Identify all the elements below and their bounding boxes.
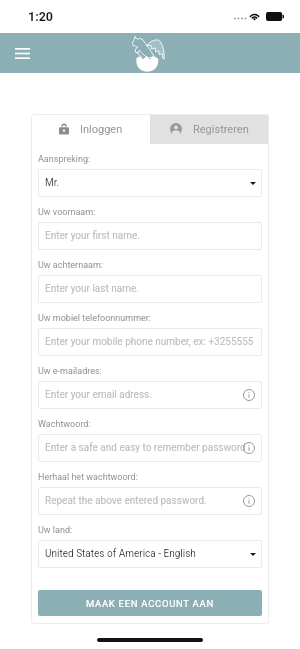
staticText: Enter your first name. (45, 230, 140, 242)
staticText: MAAK EEN ACCOUNT AAN (86, 598, 214, 609)
button[interactable]: Info (242, 441, 256, 455)
button[interactable]: Enter your first name. (38, 222, 262, 250)
staticText: Uw achternaam: (38, 260, 103, 271)
button[interactable]: Mr. (38, 169, 262, 197)
button[interactable]: Menu (10, 41, 34, 65)
staticText: Enter a safe and easy to remember passwo… (45, 442, 246, 454)
button[interactable]: Enter your last name. (38, 275, 262, 303)
staticText: Registreren (193, 123, 249, 136)
button[interactable]: Enter your mobile phone number, ex: +325… (38, 328, 262, 356)
staticText: Enter your mobile phone number, ex: +325… (45, 336, 254, 348)
button[interactable]: MAAK EEN ACCOUNT AAN (38, 590, 262, 616)
button[interactable]: Info (242, 494, 256, 508)
staticText: Enter your email adress. (45, 389, 152, 401)
button[interactable]: Repeat the above entered password. (38, 487, 262, 515)
button[interactable]: Enter a safe and easy to remember passwo… (38, 434, 262, 462)
staticText: Uw land: (38, 525, 73, 536)
staticText: Uw voornaam: (38, 207, 96, 218)
staticText: 1:20 (28, 9, 54, 24)
staticText: Herhaal het wachtwoord: (38, 472, 138, 483)
staticText: Uw mobiel telefoonnummer: (38, 313, 152, 324)
staticText: Mr. (45, 177, 60, 189)
staticText: Wachtwoord: (38, 419, 91, 430)
staticText: Uw e-mailadres: (38, 366, 102, 377)
staticText: Enter your last name. (45, 283, 139, 295)
staticText: Aanspreking: (38, 154, 91, 165)
button[interactable]: United States of America - English (38, 540, 262, 568)
button[interactable]: Info (242, 388, 256, 402)
button[interactable]: Enter your email adress. (38, 381, 262, 409)
staticText: United States of America - English (45, 548, 196, 560)
staticText: Repeat the above entered password. (45, 495, 207, 507)
button[interactable]: Inloggen (31, 114, 150, 144)
staticText: Inloggen (80, 123, 123, 136)
button[interactable]: Registreren (150, 114, 269, 144)
